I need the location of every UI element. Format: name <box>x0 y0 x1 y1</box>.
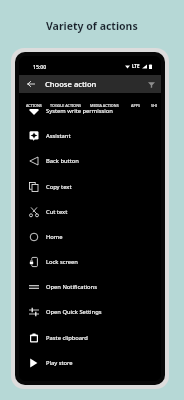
button[interactable]: Paste clipboard <box>19 325 161 350</box>
button[interactable]: Open Quick Settings <box>19 299 161 324</box>
button[interactable]: ACTIONS <box>22 93 46 108</box>
button[interactable]: Assistant <box>19 123 161 148</box>
staticText: Choose action <box>45 79 97 89</box>
staticText: Back button <box>46 157 79 165</box>
staticText: Lock screen <box>46 258 78 266</box>
button[interactable]: SHORTCUTS <box>147 93 161 108</box>
button[interactable]: Play store <box>19 350 161 375</box>
button[interactable]: Filter <box>143 76 159 92</box>
button[interactable]: Back <box>23 76 39 92</box>
staticText: SHORTCUTS <box>151 103 157 108</box>
button[interactable]: Copy text <box>19 174 161 199</box>
button[interactable]: Open Notifications <box>19 274 161 299</box>
staticText: TOGGLE ACTIONS <box>50 103 82 108</box>
staticText: Variety of actions <box>46 19 138 33</box>
button[interactable]: Lock screen <box>19 249 161 274</box>
button[interactable]: System write permission <box>19 109 161 123</box>
staticText: Open Quick Settings <box>46 308 102 316</box>
staticText: LTE <box>132 63 140 69</box>
button[interactable]: MEDIA ACTIONS <box>86 93 123 108</box>
staticText: 15:00 <box>33 63 47 70</box>
staticText: Open Notifications <box>46 283 97 291</box>
button[interactable]: Home <box>19 224 161 249</box>
staticText: APPS <box>131 103 140 108</box>
staticText: MEDIA ACTIONS <box>90 103 119 108</box>
button[interactable]: Cut text <box>19 199 161 224</box>
staticText: Play store <box>46 359 73 367</box>
button[interactable]: TOGGLE ACTIONS <box>46 93 86 108</box>
staticText: System write permission <box>46 109 113 115</box>
button[interactable]: Back button <box>19 148 161 173</box>
button[interactable]: APPS <box>123 93 147 108</box>
staticText: Home <box>46 233 63 241</box>
staticText: Cut text <box>46 208 68 216</box>
staticText: Assistant <box>46 132 71 140</box>
staticText: ACTIONS <box>26 103 42 108</box>
staticText: Paste clipboard <box>46 334 88 342</box>
staticText: Copy text <box>46 183 72 191</box>
